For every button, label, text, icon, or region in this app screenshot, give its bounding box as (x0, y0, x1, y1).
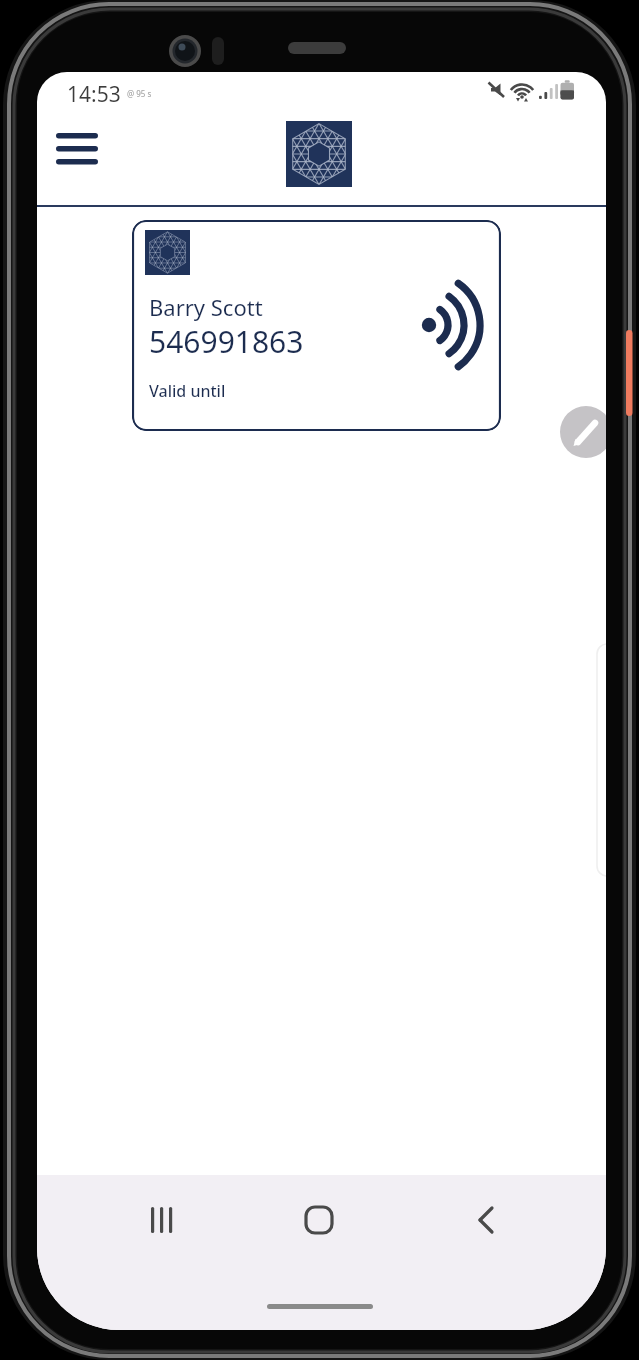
staticText: Barry Scott (149, 292, 263, 322)
button[interactable] (456, 1200, 516, 1240)
button[interactable] (134, 1200, 194, 1240)
button[interactable] (289, 1200, 349, 1240)
button[interactable] (47, 124, 107, 176)
button[interactable] (560, 406, 606, 458)
button[interactable]: Barry Scott (132, 220, 501, 431)
staticText: 14:53 (67, 80, 121, 109)
staticText: Valid until (149, 380, 226, 402)
button[interactable] (286, 121, 352, 187)
staticText: @ 95 s (127, 88, 152, 99)
staticText: 546991863 (149, 321, 304, 362)
